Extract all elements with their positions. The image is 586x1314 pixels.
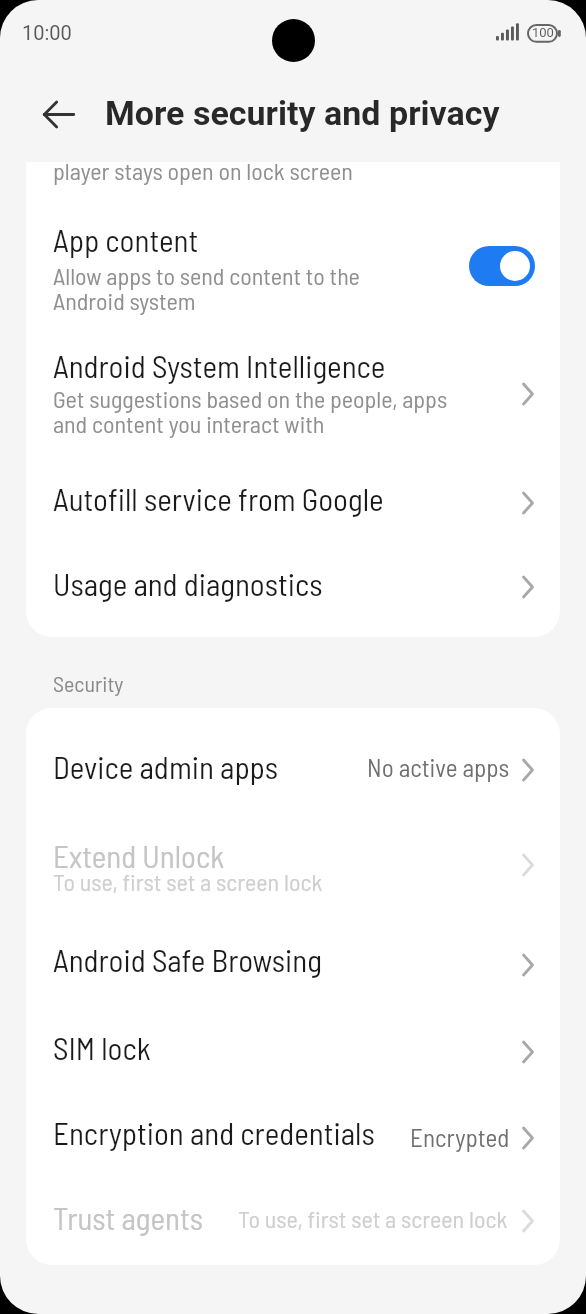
staticText: Android Safe Browsing	[53, 941, 322, 978]
staticText: More security and privacy	[105, 93, 500, 133]
button[interactable]: Device admin apps	[26, 708, 560, 812]
staticText: Usage and diagnostics	[53, 565, 323, 602]
staticText: Allow apps to send content to the Androi…	[53, 261, 360, 315]
staticText: Device admin apps	[53, 748, 279, 785]
staticText: Autofill service from Google	[53, 480, 384, 517]
staticText: Encrypted	[410, 1122, 510, 1152]
staticText: Security	[53, 670, 124, 696]
staticText: player stays open on lock screen	[53, 162, 353, 185]
staticText: 100	[532, 25, 554, 40]
button[interactable]: player stays open on lock screen	[26, 162, 560, 200]
button[interactable]: Trust agents	[26, 1174, 560, 1265]
staticText: Extend Unlock	[53, 837, 225, 874]
button[interactable]	[469, 246, 535, 286]
button[interactable]: Android Safe Browsing	[26, 920, 560, 1002]
staticText: To use, first set a screen lock	[238, 1204, 508, 1233]
staticText: 10:00	[22, 21, 72, 44]
staticText: App content	[53, 221, 199, 258]
button[interactable]: Usage and diagnostics	[26, 546, 560, 637]
button[interactable]: Extend Unlock	[26, 812, 560, 920]
staticText: Trust agents	[53, 1199, 204, 1236]
staticText: SIM lock	[53, 1029, 151, 1066]
staticText: No active apps	[367, 752, 510, 782]
staticText: Android System Intelligence	[53, 347, 386, 384]
button[interactable]: SIM lock	[26, 1002, 560, 1088]
staticText: Get suggestions based on the people, app…	[53, 384, 448, 438]
button[interactable]: Android System Intelligence	[26, 329, 560, 460]
button[interactable]: Encryption and credentials	[26, 1088, 560, 1174]
button[interactable]: Autofill service from Google	[26, 460, 560, 546]
staticText: Encryption and credentials	[53, 1114, 375, 1151]
staticText: To use, first set a screen lock	[53, 867, 323, 896]
button[interactable]: App content	[26, 200, 560, 329]
button[interactable]	[36, 99, 82, 131]
